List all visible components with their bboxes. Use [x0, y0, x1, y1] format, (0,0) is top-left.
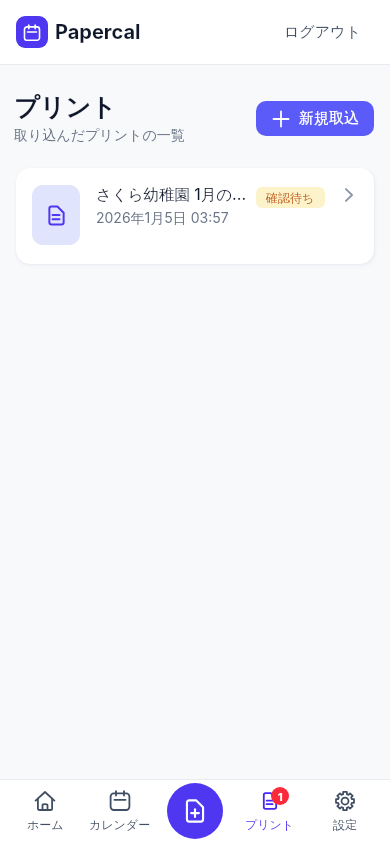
staticText: プリント: [14, 92, 117, 123]
staticText: プリント: [245, 817, 295, 832]
button[interactable]: カレンダー: [82, 779, 157, 844]
staticText: 確認待ち: [266, 190, 315, 205]
staticText: ホーム: [27, 817, 64, 832]
staticText: 新規取込: [299, 109, 359, 128]
staticText: Papercal: [55, 20, 141, 44]
button[interactable]: 新規取込: [256, 101, 374, 136]
button[interactable]: 新規取込: [167, 783, 223, 839]
staticText: 1: [278, 790, 283, 803]
button[interactable]: Papercal: [16, 16, 141, 48]
staticText: ログアウト: [284, 23, 361, 42]
staticText: さくら幼稚園 1月の...: [96, 185, 247, 205]
staticText: カレンダー: [89, 817, 151, 832]
button[interactable]: 1: [232, 779, 307, 844]
button[interactable]: さくら幼稚園 1月の...: [16, 168, 374, 264]
button[interactable]: ホーム: [8, 779, 82, 844]
staticText: 2026年1月5日 03:57: [96, 209, 229, 227]
staticText: 設定: [333, 817, 357, 832]
button[interactable]: 設定: [307, 779, 382, 844]
button[interactable]: ログアウト: [276, 17, 374, 48]
staticText: 取り込んだプリントの一覧: [14, 127, 185, 145]
